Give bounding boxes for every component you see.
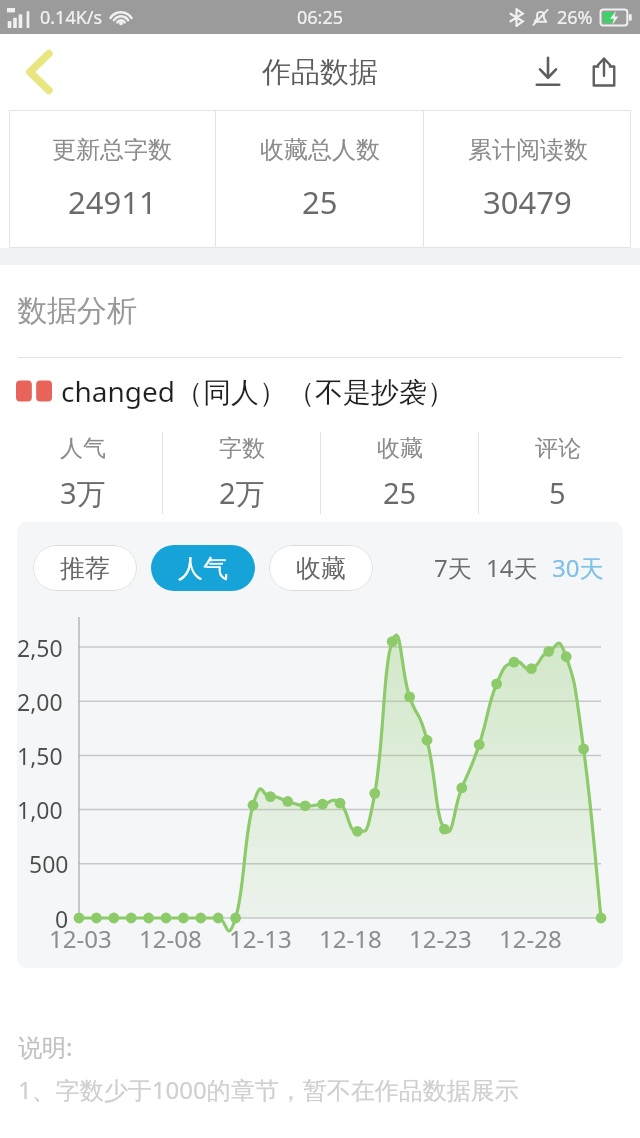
- staticText: 收藏总人数: [260, 135, 380, 165]
- staticText: 2,500: [17, 632, 69, 663]
- button[interactable]: 更新总字数: [9, 110, 215, 248]
- staticText: changed（同人）（不是抄袭）: [61, 372, 455, 410]
- button[interactable]: Back: [12, 44, 68, 100]
- staticText: 14天: [486, 551, 538, 584]
- staticText: 25: [383, 473, 417, 512]
- button[interactable]: 累计阅读数: [424, 110, 631, 248]
- button[interactable]: 收藏: [321, 424, 478, 522]
- staticText: 收藏: [377, 434, 423, 463]
- staticText: 1,000: [17, 794, 69, 825]
- button[interactable]: 评论: [479, 424, 636, 522]
- staticText: 5: [549, 473, 566, 512]
- staticText: 1,500: [17, 740, 69, 771]
- staticText: 7天: [434, 551, 472, 584]
- staticText: 06:25: [297, 5, 344, 30]
- staticText: 12-23: [409, 922, 472, 955]
- staticText: 3万: [60, 473, 106, 513]
- staticText: 25: [302, 181, 338, 223]
- button[interactable]: 7天: [431, 543, 475, 592]
- staticText: 数据分析: [17, 292, 137, 330]
- staticText: 12-28: [499, 922, 562, 955]
- staticText: 推荐: [60, 553, 110, 584]
- staticText: 累计阅读数: [468, 135, 588, 165]
- staticText: 1、字数少于1000的章节，暂不在作品数据展示: [18, 1073, 519, 1106]
- staticText: 2,000: [17, 686, 69, 717]
- button[interactable]: 人气: [151, 545, 255, 591]
- staticText: 收藏: [296, 553, 346, 584]
- button[interactable]: 收藏总人数: [216, 110, 423, 248]
- staticText: 2万: [219, 473, 265, 513]
- staticText: 30479: [483, 181, 572, 223]
- button[interactable]: 人气: [4, 424, 162, 522]
- staticText: 0: [55, 903, 69, 934]
- staticText: 12-08: [139, 922, 202, 955]
- staticText: 字数: [219, 434, 265, 463]
- button[interactable]: 推荐: [33, 545, 137, 591]
- staticText: 评论: [535, 434, 581, 463]
- staticText: 0.14K/s: [40, 5, 103, 30]
- button[interactable]: Download: [520, 44, 576, 100]
- staticText: 26%: [557, 5, 593, 30]
- staticText: 12-18: [319, 922, 382, 955]
- button[interactable]: 收藏: [269, 545, 373, 591]
- staticText: 人气: [60, 434, 106, 463]
- staticText: 12-13: [229, 922, 292, 955]
- button[interactable]: Share: [576, 44, 632, 100]
- staticText: 500: [29, 848, 69, 879]
- button[interactable]: 14天: [483, 543, 541, 592]
- staticText: 更新总字数: [52, 135, 172, 165]
- button[interactable]: 字数: [163, 424, 320, 522]
- staticText: 人气: [178, 553, 228, 584]
- button[interactable]: changed（同人）（不是抄袭）: [0, 358, 640, 424]
- staticText: 30天: [552, 551, 604, 584]
- staticText: 24911: [68, 181, 157, 223]
- staticText: 12-03: [49, 922, 112, 955]
- staticText: 作品数据: [262, 54, 378, 91]
- staticText: 说明:: [18, 1030, 73, 1063]
- button[interactable]: 30天: [549, 543, 607, 592]
